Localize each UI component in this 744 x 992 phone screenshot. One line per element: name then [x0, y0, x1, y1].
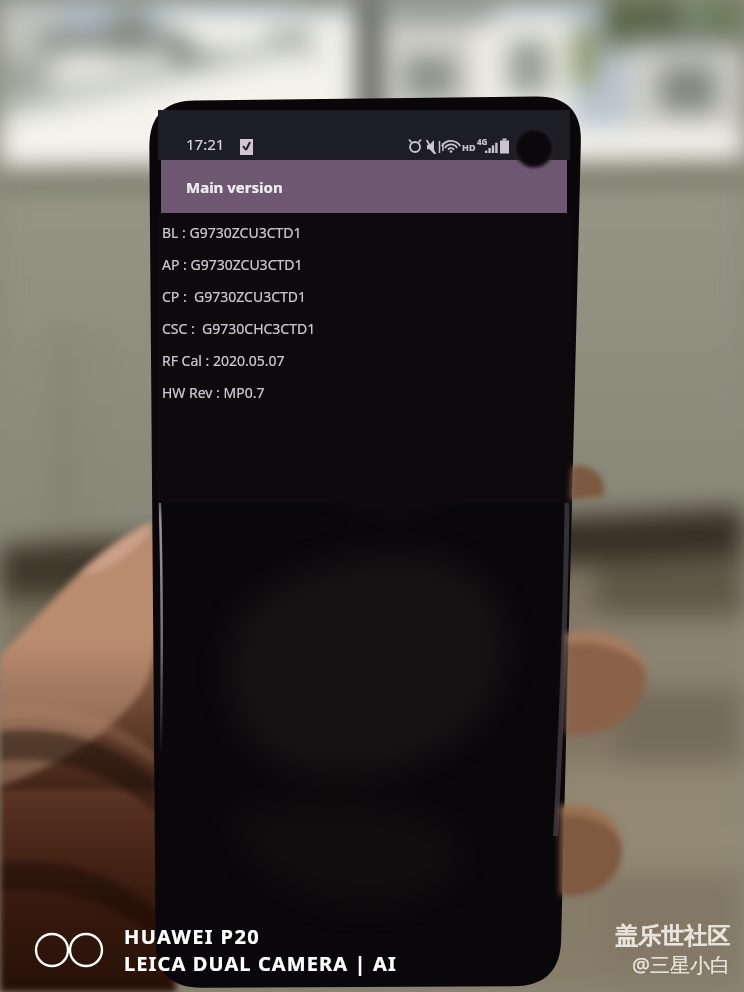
- staticText: CSC : G9730CHC3CTD1: [162, 319, 316, 338]
- staticText: CP : G9730ZCU3CTD1: [162, 287, 307, 306]
- button[interactable]: Main version: [161, 160, 567, 213]
- staticText: HD: [462, 141, 476, 153]
- staticText: HW Rev : MP0.7: [162, 383, 265, 402]
- staticText: RF Cal : 2020.05.07: [162, 351, 285, 370]
- staticText: 4G: [477, 136, 488, 147]
- staticText: Main version: [186, 177, 283, 197]
- staticText: HUAWEI P20: [124, 923, 261, 950]
- staticText: AP : G9730ZCU3CTD1: [162, 255, 303, 274]
- staticText: @三星小白: [632, 951, 730, 978]
- staticText: BL : G9730ZCU3CTD1: [162, 223, 302, 242]
- staticText: LEICA DUAL CAMERA | AI: [124, 950, 397, 977]
- staticText: 17:21: [186, 134, 225, 154]
- staticText: 盖乐世社区: [615, 922, 730, 951]
